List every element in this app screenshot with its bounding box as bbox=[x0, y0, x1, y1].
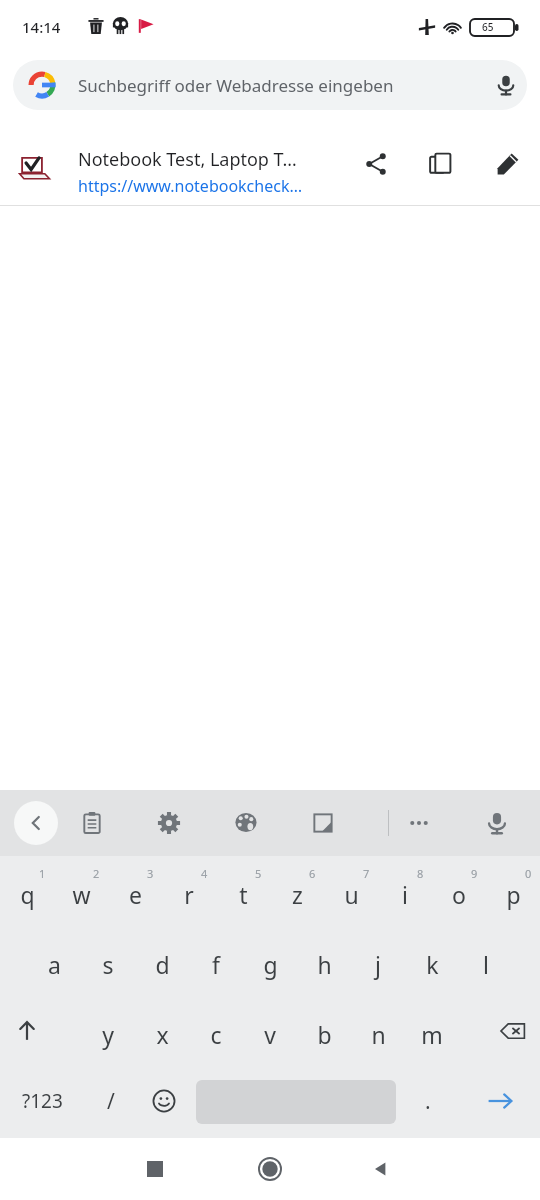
staticText: p bbox=[506, 879, 521, 910]
staticText: 14:14 bbox=[22, 17, 61, 37]
staticText: 4 bbox=[201, 866, 208, 881]
button[interactable]: z bbox=[270, 856, 324, 926]
staticText: . bbox=[425, 1087, 431, 1116]
staticText: 0 bbox=[525, 866, 532, 881]
staticText: r bbox=[184, 879, 194, 910]
button[interactable]: r bbox=[162, 856, 216, 926]
button[interactable]: h bbox=[297, 926, 351, 996]
staticText: n bbox=[371, 1019, 386, 1050]
button[interactable]: Recent apps bbox=[134, 1148, 176, 1190]
button[interactable]: t bbox=[216, 856, 270, 926]
staticText: u bbox=[344, 879, 359, 910]
staticText: 2 bbox=[93, 866, 100, 881]
staticText: ?123 bbox=[22, 1088, 63, 1114]
staticText: Suchbegriff oder Webadresse eingeben bbox=[78, 74, 394, 97]
button[interactable]: More options bbox=[398, 802, 440, 844]
staticText: 9 bbox=[471, 866, 478, 881]
staticText: 5 bbox=[255, 866, 262, 881]
button[interactable]: Back bbox=[360, 1148, 402, 1190]
staticText: y bbox=[102, 1019, 114, 1050]
button[interactable]: y bbox=[81, 996, 135, 1066]
staticText: d bbox=[155, 949, 170, 980]
button[interactable]: Suchbegriff oder Webadresse eingeben bbox=[13, 60, 527, 110]
button[interactable]: ?123 bbox=[4, 1066, 80, 1136]
staticText: https://www.notebookcheck… bbox=[78, 175, 303, 197]
button[interactable]: n bbox=[351, 996, 405, 1066]
button[interactable]: w bbox=[54, 856, 108, 926]
staticText: j bbox=[375, 949, 381, 980]
staticText: v bbox=[264, 1019, 276, 1050]
button[interactable]: q bbox=[0, 856, 54, 926]
staticText: e bbox=[129, 879, 142, 910]
button[interactable]: Voice search bbox=[487, 66, 525, 104]
button[interactable]: l bbox=[459, 926, 513, 996]
staticText: l bbox=[483, 949, 489, 980]
button[interactable]: x bbox=[135, 996, 189, 1066]
button[interactable]: s bbox=[81, 926, 135, 996]
button[interactable]: i bbox=[378, 856, 432, 926]
staticText: q bbox=[20, 879, 35, 910]
staticText: t bbox=[239, 879, 248, 910]
button[interactable]: Copy bbox=[419, 143, 461, 185]
button[interactable]: Back bbox=[14, 801, 58, 845]
button[interactable]: Emoji bbox=[140, 1066, 188, 1136]
staticText: h bbox=[317, 949, 332, 980]
staticText: 6 bbox=[309, 866, 316, 881]
button[interactable]: k bbox=[405, 926, 459, 996]
button[interactable]: Edit bbox=[487, 143, 529, 185]
button[interactable]: u bbox=[324, 856, 378, 926]
staticText: s bbox=[102, 949, 114, 980]
staticText: o bbox=[452, 879, 466, 910]
button[interactable]: Settings bbox=[148, 802, 190, 844]
button[interactable]: Clipboard bbox=[71, 802, 113, 844]
staticText: x bbox=[156, 1019, 169, 1050]
staticText: f bbox=[212, 949, 220, 980]
button[interactable]: a bbox=[27, 926, 81, 996]
button[interactable]: Backspace bbox=[486, 996, 540, 1066]
staticText: i bbox=[402, 879, 408, 910]
button[interactable]: Shift bbox=[0, 996, 54, 1066]
button[interactable]: Share bbox=[355, 143, 397, 185]
staticText: 8 bbox=[417, 866, 424, 881]
button[interactable]: Notebook Test, Laptop T… bbox=[0, 130, 540, 205]
staticText: w bbox=[72, 879, 91, 910]
button[interactable]: f bbox=[189, 926, 243, 996]
staticText: a bbox=[48, 949, 61, 980]
button[interactable]: o bbox=[432, 856, 486, 926]
staticText: b bbox=[317, 1019, 332, 1050]
staticText: k bbox=[426, 949, 439, 980]
button[interactable]: / bbox=[86, 1066, 136, 1136]
button[interactable]: . bbox=[404, 1066, 452, 1136]
button[interactable]: Theme bbox=[225, 802, 267, 844]
staticText: m bbox=[421, 1019, 443, 1050]
staticText: 7 bbox=[363, 866, 370, 881]
button[interactable]: m bbox=[405, 996, 459, 1066]
staticText: 65 bbox=[482, 20, 494, 34]
staticText: g bbox=[263, 949, 278, 980]
staticText: / bbox=[107, 1087, 115, 1116]
button[interactable]: b bbox=[297, 996, 351, 1066]
button[interactable]: Voice input bbox=[476, 802, 518, 844]
staticText: c bbox=[210, 1019, 222, 1050]
button[interactable]: Go bbox=[470, 1066, 530, 1136]
button[interactable]: e bbox=[108, 856, 162, 926]
staticText: Notebook Test, Laptop T… bbox=[78, 147, 297, 172]
staticText: 3 bbox=[147, 866, 154, 881]
button[interactable]: Home bbox=[249, 1148, 291, 1190]
staticText: 1 bbox=[39, 866, 46, 881]
staticText: z bbox=[292, 879, 303, 910]
button[interactable]: g bbox=[243, 926, 297, 996]
button[interactable]: p bbox=[486, 856, 540, 926]
button[interactable]: v bbox=[243, 996, 297, 1066]
button[interactable]: d bbox=[135, 926, 189, 996]
button[interactable]: j bbox=[351, 926, 405, 996]
button[interactable]: Resize bbox=[302, 802, 344, 844]
button[interactable]: c bbox=[189, 996, 243, 1066]
